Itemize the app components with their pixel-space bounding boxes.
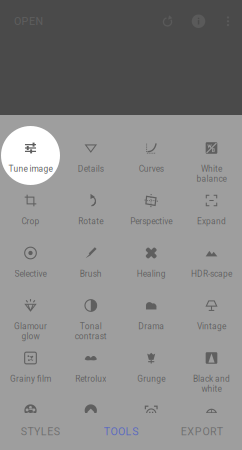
staticText: Tune image	[8, 164, 52, 174]
staticText: glow	[21, 331, 39, 341]
button[interactable]: Vignette	[61, 403, 121, 443]
staticText: Glamour	[14, 321, 47, 331]
staticText: OPEN	[14, 15, 43, 27]
staticText: Grunge	[137, 374, 165, 384]
button[interactable]: Glamour	[0, 298, 60, 338]
staticText: Curves	[139, 164, 164, 174]
staticText: contrast	[75, 331, 107, 341]
button[interactable]: Curves	[121, 141, 181, 181]
button[interactable]: Black and	[181, 351, 241, 391]
button[interactable]: Selective	[0, 246, 60, 286]
button[interactable]: OPEN	[0, 10, 57, 32]
staticText: balance	[196, 174, 226, 184]
staticText: Crop	[21, 216, 39, 226]
button[interactable]: Drama	[121, 298, 181, 338]
staticText: Vignette	[75, 426, 106, 436]
button[interactable]: Tonal	[61, 298, 121, 338]
button[interactable]: Brush	[61, 246, 121, 286]
button[interactable]: Tune image	[0, 141, 60, 181]
staticText: Lens blur	[13, 426, 48, 436]
button[interactable]: Info	[183, 13, 214, 29]
staticText: Tonal	[80, 321, 102, 331]
staticText: HDR-scape	[191, 269, 232, 279]
button[interactable]: Lens blur	[0, 403, 60, 443]
staticText: Black and	[193, 374, 230, 384]
staticText: Head pose	[131, 426, 171, 436]
button[interactable]: Crop	[0, 193, 60, 233]
staticText: Vintage	[197, 321, 226, 331]
button[interactable]: EXPORT	[161, 413, 242, 450]
button[interactable]: Head pose	[121, 403, 181, 443]
button[interactable]: White	[181, 141, 241, 181]
staticText: White	[201, 164, 222, 174]
button[interactable]: STYLES	[0, 413, 81, 450]
staticText: Brush	[80, 269, 102, 279]
staticText: Retrolux	[75, 374, 106, 384]
staticText: TOOLS	[104, 425, 138, 438]
staticText: Details	[78, 164, 104, 174]
staticText: STYLES	[21, 425, 60, 438]
button[interactable]: Vintage	[181, 298, 241, 338]
button[interactable]: Perspective	[121, 193, 181, 233]
button[interactable]: Undo	[152, 13, 183, 29]
staticText: Healing	[137, 269, 166, 279]
staticText: white	[201, 384, 221, 394]
staticText: Frames	[197, 426, 225, 436]
staticText: Rotate	[78, 216, 103, 226]
staticText: EXPORT	[181, 425, 223, 438]
staticText: Selective	[14, 269, 46, 279]
button[interactable]: TOOLS	[81, 413, 161, 450]
button[interactable]: Grunge	[121, 351, 181, 391]
button[interactable]: Expand	[181, 193, 241, 233]
staticText: Grainy film	[10, 374, 51, 384]
button[interactable]: Grainy film	[0, 351, 60, 391]
staticText: Expand	[197, 216, 226, 226]
button[interactable]: Details	[61, 141, 121, 181]
staticText: Perspective	[130, 216, 172, 226]
button[interactable]: Retrolux	[61, 351, 121, 391]
button[interactable]: Frames	[181, 403, 241, 443]
button[interactable]: Healing	[121, 246, 181, 286]
button[interactable]: HDR-scape	[181, 246, 241, 286]
button[interactable]: Rotate	[61, 193, 121, 233]
staticText: Drama	[138, 321, 164, 331]
